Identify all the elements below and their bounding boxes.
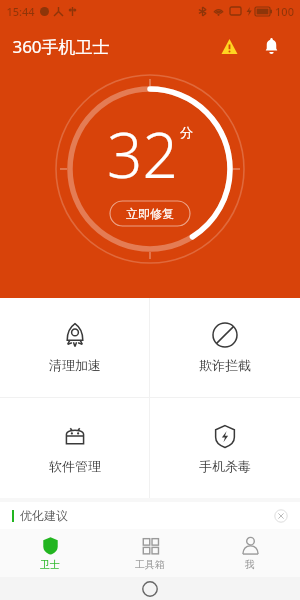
staticText: 优化建议 bbox=[20, 508, 68, 523]
staticText: 清理加速 bbox=[49, 357, 101, 373]
button[interactable]: 手机杀毒 bbox=[150, 398, 300, 498]
staticText: 软件管理 bbox=[49, 458, 101, 474]
staticText: 立即修复 bbox=[126, 206, 174, 221]
staticText: 分 bbox=[180, 124, 193, 140]
button[interactable]: 优化建议 bbox=[0, 502, 300, 529]
button[interactable]: 立即修复 bbox=[109, 200, 191, 227]
staticText: 32 bbox=[107, 112, 178, 196]
staticText: 100 bbox=[275, 4, 294, 19]
button[interactable]: Home bbox=[139, 578, 161, 600]
button[interactable]: 清理加速 bbox=[0, 298, 149, 397]
staticText: 15:44 bbox=[6, 4, 35, 19]
staticText: 360手机卫士 bbox=[12, 35, 110, 58]
button[interactable]: Warning bbox=[214, 31, 244, 61]
button[interactable]: 我 bbox=[200, 529, 300, 577]
button[interactable]: Dismiss bbox=[274, 509, 288, 523]
staticText: 手机杀毒 bbox=[199, 458, 251, 474]
staticText: 工具箱 bbox=[135, 558, 165, 571]
button[interactable]: 卫士 bbox=[0, 529, 100, 577]
button[interactable]: 欺诈拦截 bbox=[150, 298, 300, 397]
staticText: 我 bbox=[245, 558, 255, 571]
button[interactable]: 工具箱 bbox=[100, 529, 200, 577]
button[interactable]: Notifications bbox=[256, 31, 286, 61]
button[interactable]: 软件管理 bbox=[0, 398, 149, 498]
staticText: 卫士 bbox=[40, 558, 60, 571]
staticText: 欺诈拦截 bbox=[199, 357, 251, 373]
